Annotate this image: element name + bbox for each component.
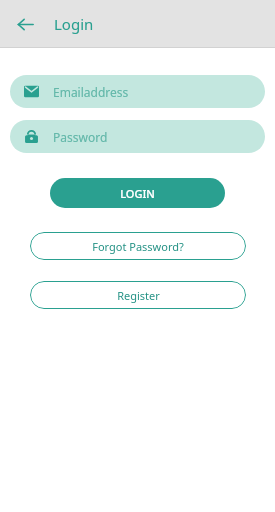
staticText: Password (53, 129, 108, 145)
button[interactable]: Back (10, 9, 40, 39)
button[interactable]: LOGIN (50, 178, 225, 208)
staticText: Register (117, 288, 160, 303)
button[interactable]: Email (10, 75, 265, 108)
button[interactable]: Password (10, 120, 265, 153)
staticText: Login (54, 14, 94, 34)
staticText: LOGIN (120, 186, 155, 201)
button[interactable]: Register (30, 281, 246, 309)
button[interactable]: Forgot Password? (30, 232, 246, 260)
staticText: Emailaddress (53, 84, 129, 100)
staticText: Forgot Password? (92, 239, 184, 254)
